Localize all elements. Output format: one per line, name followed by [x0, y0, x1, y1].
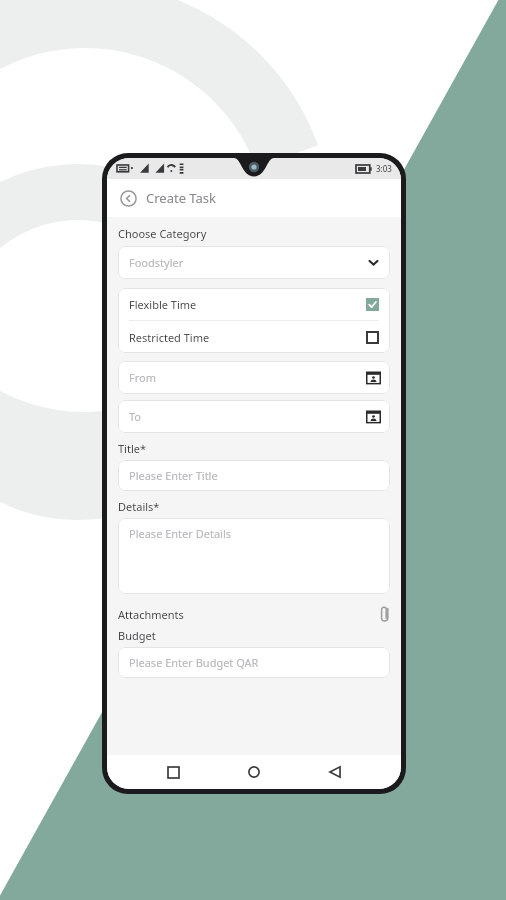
- button[interactable]: From: [118, 361, 390, 394]
- button[interactable]: Please Enter Details: [118, 518, 390, 594]
- other: Add attachment: [380, 606, 390, 622]
- staticText: From: [129, 370, 156, 385]
- staticText: Restricted Time: [129, 330, 210, 345]
- staticText: Details*: [118, 499, 160, 514]
- staticText: Please Enter Details: [129, 526, 232, 541]
- staticText: Attachments: [118, 607, 184, 622]
- button[interactable]: Foodstyler: [118, 246, 390, 279]
- button[interactable]: Please Enter Budget QAR: [118, 647, 390, 678]
- button[interactable]: Please Enter Title: [118, 460, 390, 491]
- staticText: Budget: [118, 628, 156, 643]
- button[interactable]: Back: [320, 757, 350, 787]
- button[interactable]: Home: [239, 757, 269, 787]
- button[interactable]: Pick date: [366, 370, 381, 385]
- button[interactable]: Recent apps: [158, 757, 188, 787]
- staticText: Choose Category: [118, 226, 207, 241]
- button[interactable]: Pick date: [366, 409, 381, 424]
- staticText: Create Task: [146, 189, 217, 207]
- button[interactable]: Back: [117, 187, 139, 209]
- button[interactable]: Restricted Time: [118, 321, 390, 353]
- staticText: Flexible Time: [129, 297, 197, 312]
- button[interactable]: Flexible Time: [118, 288, 390, 320]
- staticText: Please Enter Title: [129, 468, 218, 483]
- staticText: 3:03: [376, 163, 392, 174]
- staticText: Foodstyler: [129, 255, 184, 270]
- staticText: To: [129, 409, 142, 424]
- staticText: Please Enter Budget QAR: [129, 655, 259, 670]
- staticText: Title*: [118, 441, 147, 456]
- button[interactable]: Attachments: [118, 604, 390, 624]
- button[interactable]: To: [118, 400, 390, 433]
